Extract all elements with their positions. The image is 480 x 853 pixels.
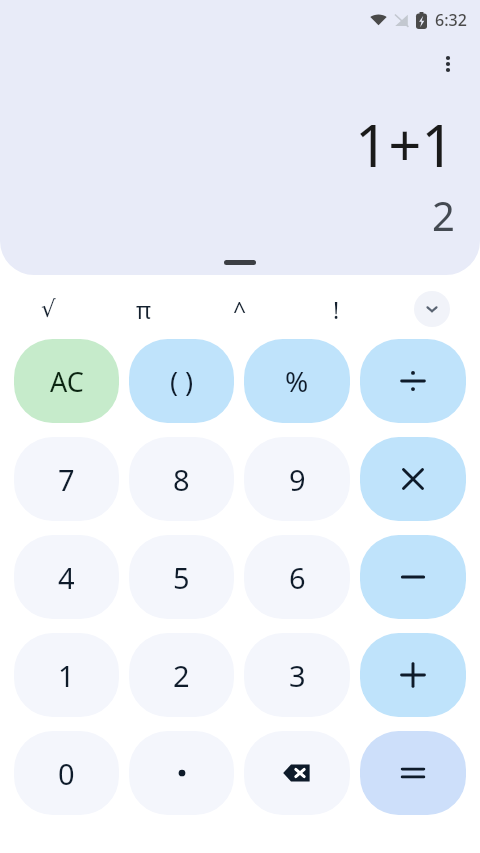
button[interactable]: 6 (244, 535, 350, 619)
staticText: 6 (289, 558, 306, 597)
button[interactable]: ^ (192, 287, 288, 331)
staticText: 8 (173, 460, 190, 499)
button[interactable]: Equals (360, 731, 466, 815)
button[interactable]: 5 (129, 535, 234, 619)
staticText: 9 (289, 460, 306, 499)
button[interactable]: 2 (129, 633, 234, 717)
staticText: 2 (173, 656, 190, 695)
button[interactable]: Add (360, 633, 466, 717)
button[interactable]: AC (14, 339, 119, 423)
staticText: ( ) (170, 363, 194, 400)
staticText: 3 (289, 656, 306, 695)
button[interactable]: 0 (14, 731, 119, 815)
staticText: 1+1 (355, 105, 455, 184)
staticText: 7 (58, 460, 75, 499)
button[interactable]: Decimal point (129, 731, 234, 815)
button[interactable]: 8 (129, 437, 234, 521)
staticText: 4 (58, 558, 75, 597)
button[interactable]: π (96, 287, 192, 331)
button[interactable]: √ (0, 287, 96, 331)
button[interactable]: Collapse functions (414, 291, 450, 327)
button[interactable]: 1 (14, 633, 119, 717)
staticText: ! (333, 294, 340, 325)
button[interactable]: ( ) (129, 339, 234, 423)
staticText: 2 (432, 188, 455, 242)
staticText: % (285, 362, 309, 400)
button[interactable]: 9 (244, 437, 350, 521)
button[interactable]: 3 (244, 633, 350, 717)
button[interactable]: More options (428, 44, 468, 84)
button[interactable]: Backspace (244, 731, 350, 815)
staticText: √ (41, 296, 56, 323)
staticText: 5 (173, 558, 190, 597)
button[interactable]: Multiply (360, 437, 466, 521)
staticText: 1 (58, 656, 75, 695)
button[interactable]: 7 (14, 437, 119, 521)
staticText: AC (50, 363, 84, 400)
staticText: π (136, 294, 152, 325)
staticText: ^ (233, 294, 247, 325)
button[interactable]: 4 (14, 535, 119, 619)
staticText: 0 (58, 754, 75, 793)
staticText: 6:32 (435, 9, 467, 31)
button[interactable]: % (244, 339, 350, 423)
button[interactable]: Divide (360, 339, 466, 423)
button[interactable]: Subtract (360, 535, 466, 619)
button[interactable]: ! (288, 287, 384, 331)
button[interactable]: Expand display (224, 260, 256, 265)
